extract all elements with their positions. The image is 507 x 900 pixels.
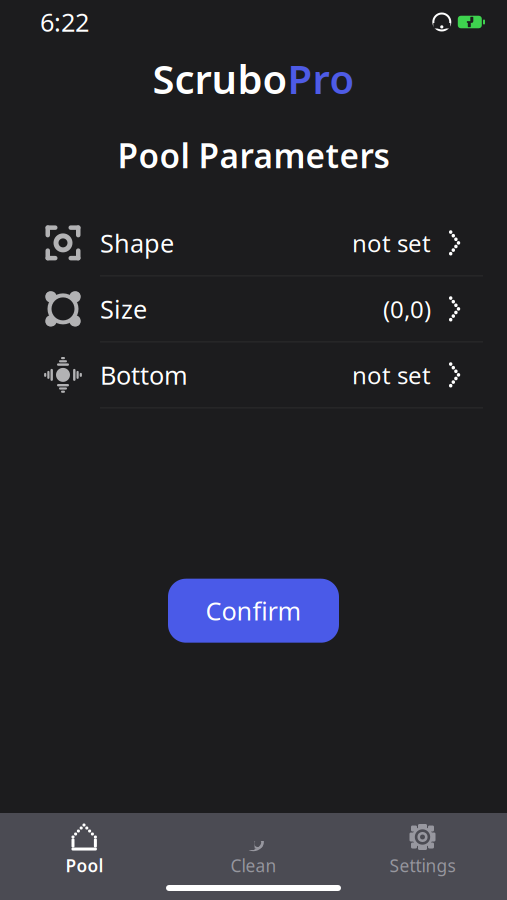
staticText: Pool Parameters xyxy=(117,133,389,177)
staticText: Pool xyxy=(65,854,103,877)
staticText: not set xyxy=(352,359,431,391)
staticText: Confirm xyxy=(205,594,301,627)
staticText: (0,0) xyxy=(383,293,431,325)
staticText: Settings xyxy=(389,854,455,877)
button[interactable]: Pool xyxy=(0,813,169,883)
staticText: not set xyxy=(352,227,431,259)
staticText: Scrubo xyxy=(152,52,287,105)
staticText: Shape xyxy=(100,226,174,260)
staticText: Bottom xyxy=(100,358,188,392)
button[interactable]: Size xyxy=(24,276,483,342)
button[interactable]: Clean xyxy=(169,813,338,883)
staticText: Clean xyxy=(230,854,276,877)
button[interactable]: Settings xyxy=(338,813,507,883)
staticText: 6:22 xyxy=(40,5,89,39)
staticText: Size xyxy=(100,292,147,326)
button[interactable]: Shape xyxy=(24,210,483,276)
button[interactable]: Bottom xyxy=(24,342,483,408)
staticText: Pro xyxy=(287,52,354,105)
button[interactable]: Confirm xyxy=(168,579,339,643)
